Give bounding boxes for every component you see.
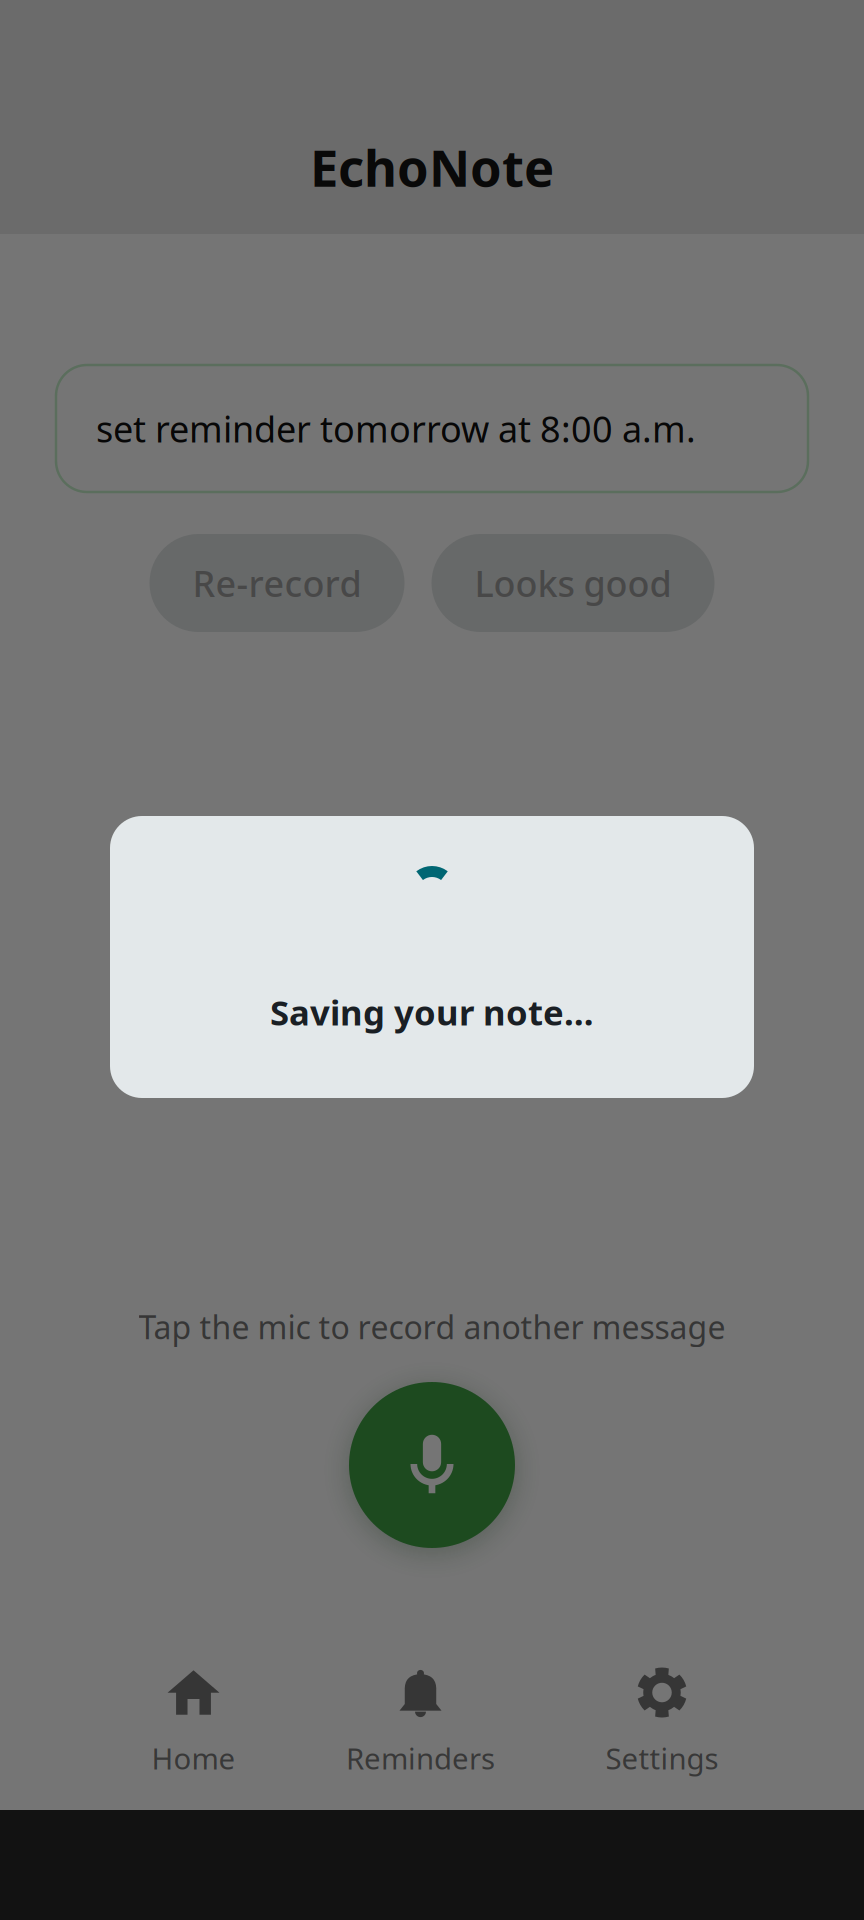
staticText: Saving your note… xyxy=(270,989,594,1035)
staticText: EchoNote xyxy=(310,133,554,201)
button[interactable]: Record a message xyxy=(349,1382,515,1548)
staticText: Settings xyxy=(605,1738,718,1777)
button[interactable]: Re-record xyxy=(149,534,404,632)
button[interactable]: Reminders xyxy=(346,1666,495,1777)
button[interactable]: Looks good xyxy=(431,534,714,632)
button[interactable]: Settings xyxy=(605,1666,718,1777)
staticText: Reminders xyxy=(346,1738,495,1777)
staticText: Tap the mic to record another message xyxy=(138,1305,725,1348)
staticText: Looks good xyxy=(474,559,671,607)
button[interactable]: Home xyxy=(151,1666,235,1777)
staticText: Re-record xyxy=(192,559,361,607)
staticText: set reminder tomorrow at 8:00 a.m. xyxy=(96,405,696,452)
staticText: Home xyxy=(151,1738,235,1777)
